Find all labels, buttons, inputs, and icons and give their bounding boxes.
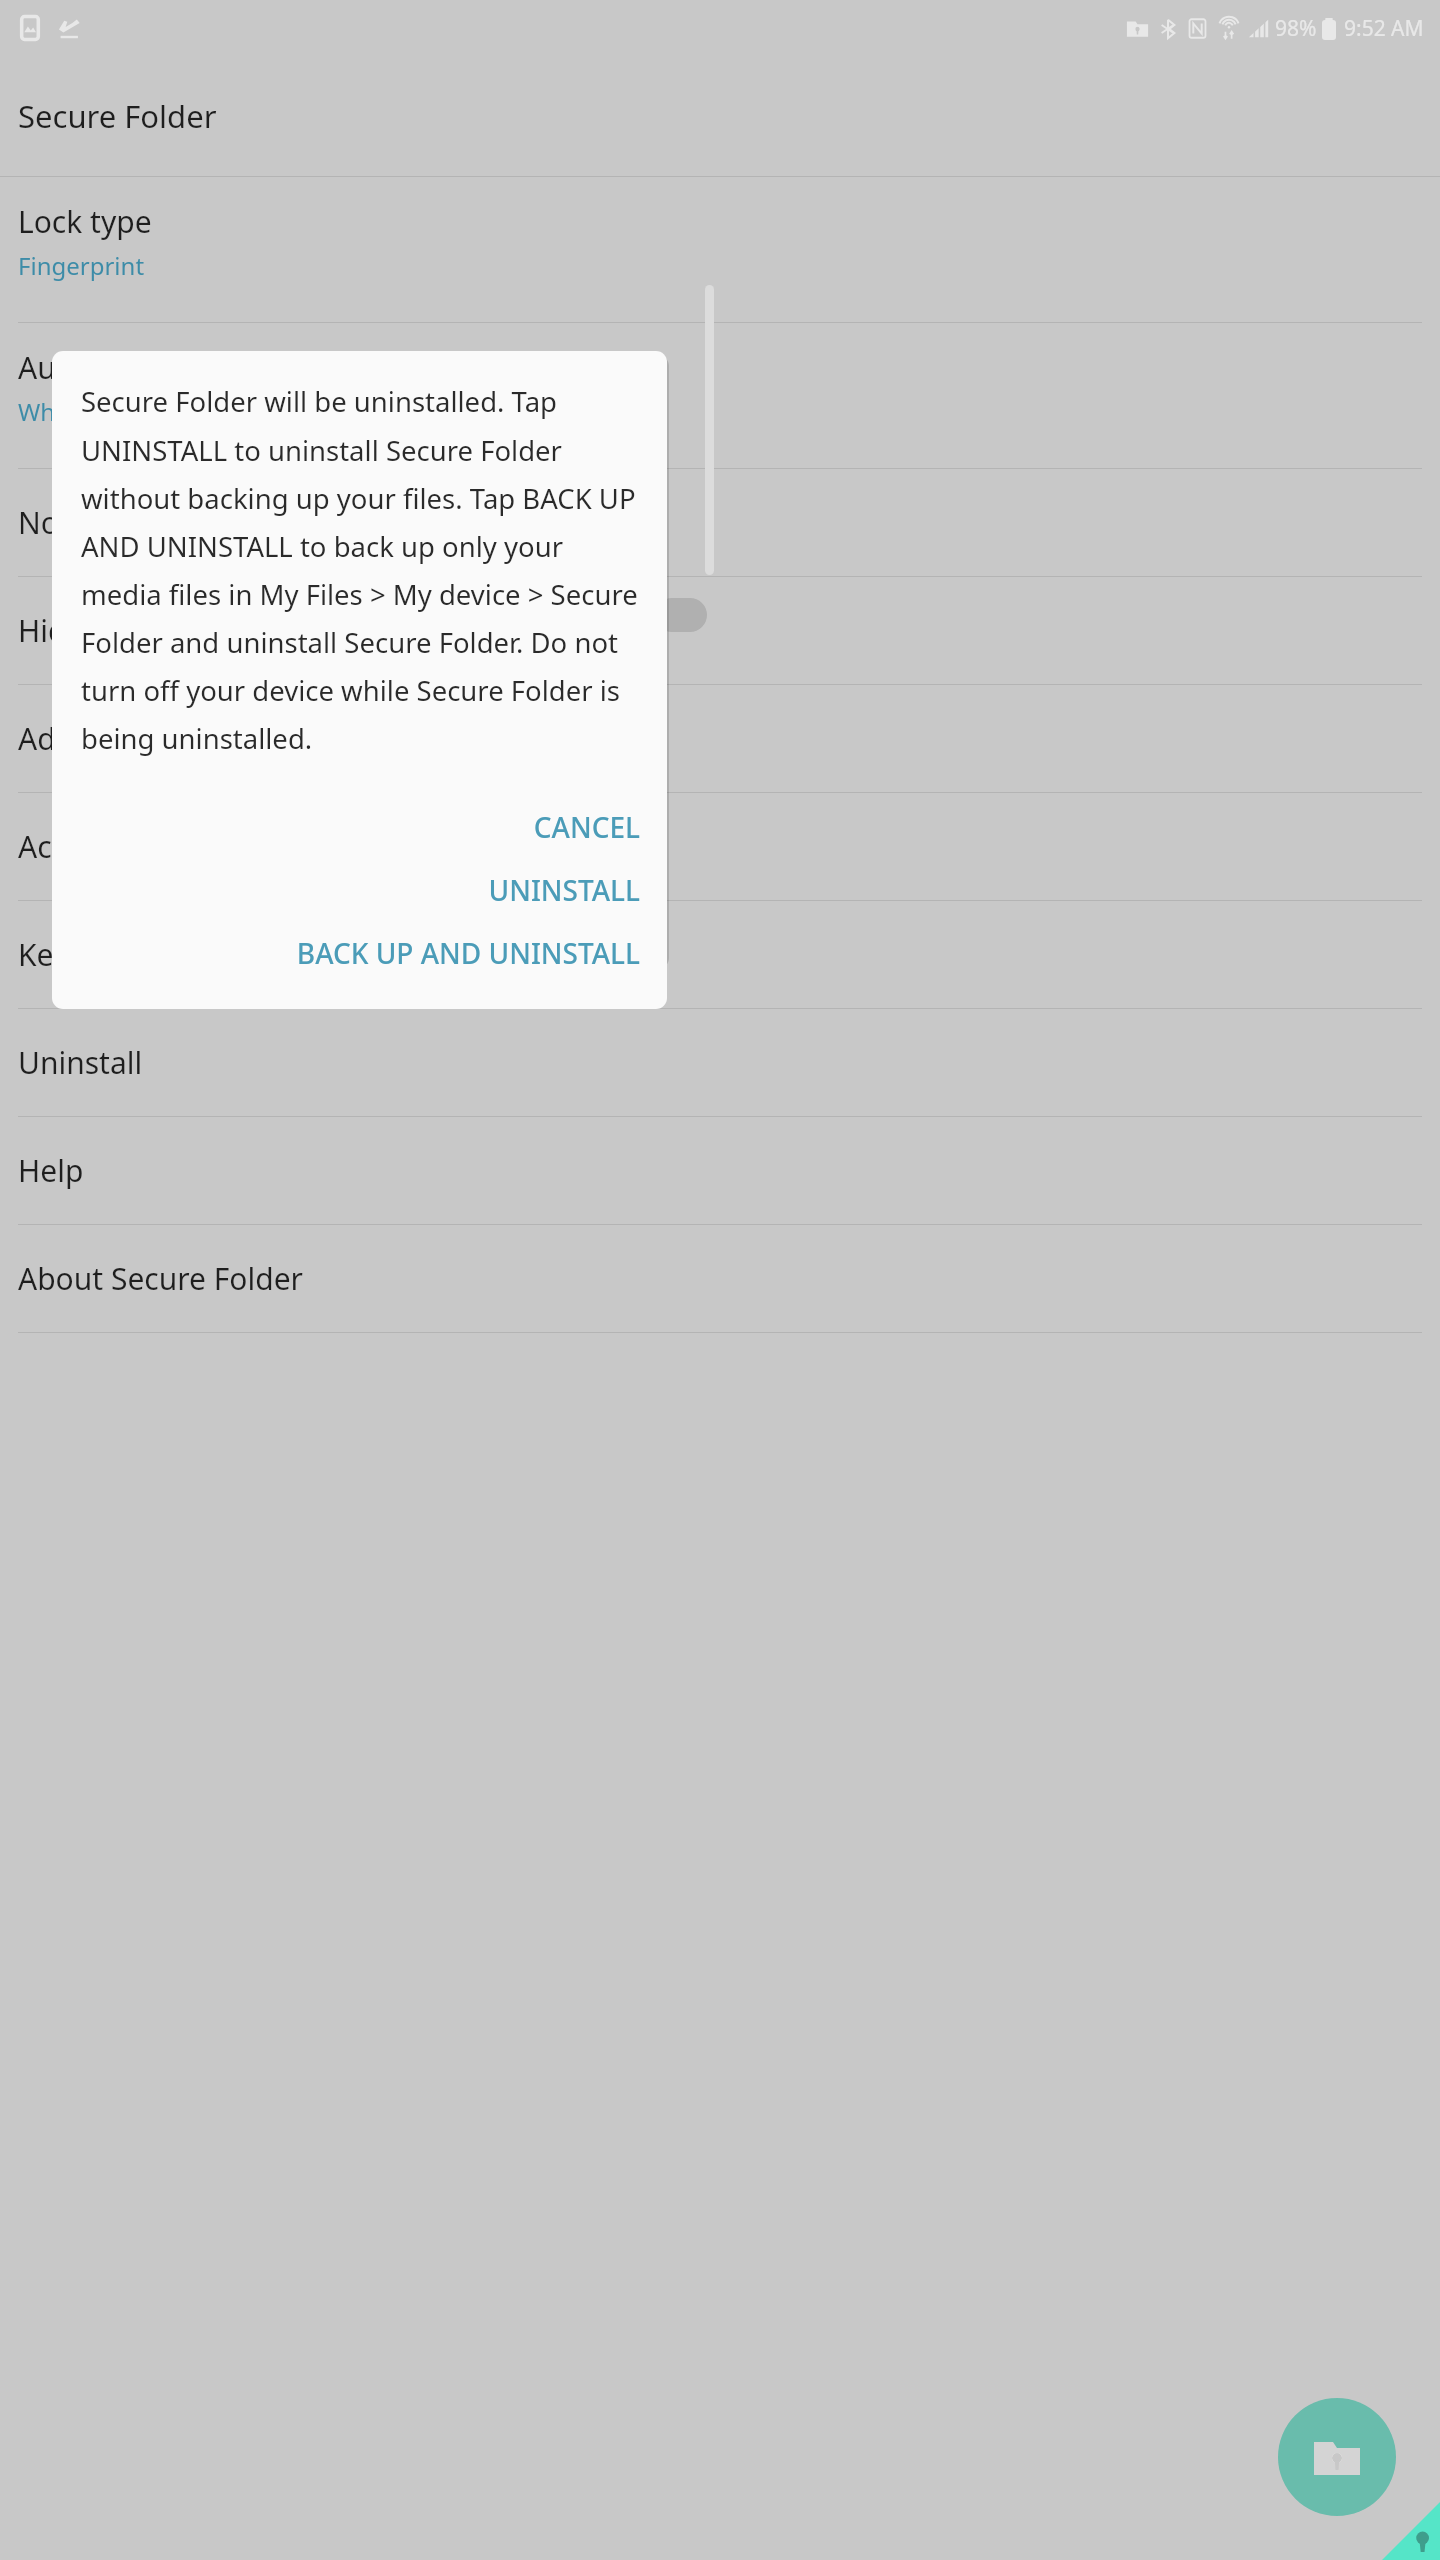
button[interactable]: BACK UP AND UNINSTALL	[81, 931, 640, 975]
staticText: CANCEL	[533, 808, 640, 846]
staticText: Auto lock Secure Folder	[18, 347, 349, 388]
staticText: Secure Folder	[18, 95, 217, 137]
staticText: Add apps	[18, 718, 150, 759]
button[interactable]: Uninstall	[0, 1009, 1440, 1116]
button[interactable]: Keep Secure Folder	[0, 901, 1440, 1008]
button[interactable]: Help	[0, 1117, 1440, 1224]
button[interactable]: Auto lock Secure Folder	[0, 323, 1440, 468]
staticText: Keep Secure Folder	[18, 934, 289, 975]
button[interactable]: CANCEL	[81, 805, 640, 849]
staticText: When screen turns off	[18, 395, 268, 428]
staticText: Fingerprint	[18, 249, 145, 282]
button[interactable]: Lock type	[0, 177, 1440, 322]
button[interactable]: Accounts	[0, 793, 1440, 900]
staticText: 98%	[1275, 14, 1317, 43]
staticText: Uninstall	[18, 1042, 143, 1083]
button[interactable]: Hide Secure Folder	[0, 577, 1440, 684]
staticText: About Secure Folder	[18, 1258, 303, 1299]
button[interactable]: UNINSTALL	[81, 868, 640, 912]
button[interactable]: About Secure Folder	[0, 1225, 1440, 1332]
staticText: Secure Folder will be uninstalled. Tap U…	[81, 383, 640, 757]
staticText: UNINSTALL	[488, 871, 640, 909]
staticText: 9:52 AM	[1344, 14, 1424, 43]
staticText: Help	[18, 1150, 84, 1191]
staticText: BACK UP AND UNINSTALL	[296, 934, 640, 972]
staticText: Hide Secure Folder	[18, 610, 284, 651]
button[interactable]: Notifications	[0, 469, 1440, 576]
staticText: Accounts	[18, 826, 147, 867]
staticText: Lock type	[18, 201, 152, 242]
staticText: Notifications	[18, 502, 197, 543]
button[interactable]: Add apps	[0, 685, 1440, 792]
button[interactable]: Open Secure Folder	[1278, 2398, 1396, 2516]
